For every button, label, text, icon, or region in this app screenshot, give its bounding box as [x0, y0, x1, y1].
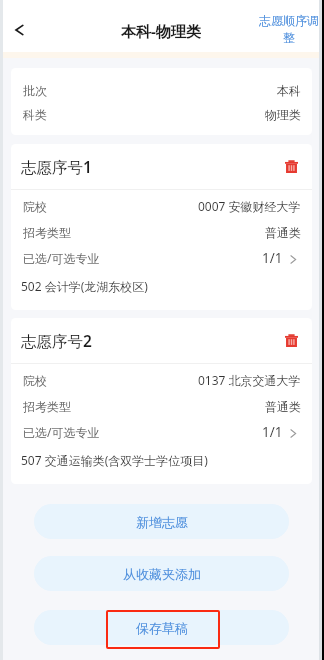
button[interactable]: 从收藏夹添加 — [34, 556, 289, 591]
staticText: 院校 — [23, 373, 47, 388]
button[interactable]: 返回 — [4, 15, 34, 45]
staticText: 志愿序号2 — [21, 330, 92, 351]
staticText: 502 会计学(龙湖东校区) — [21, 278, 148, 294]
staticText: 已选/可选专业 — [23, 424, 100, 440]
button[interactable]: 已选/可选专业 — [11, 246, 312, 270]
staticText: 从收藏夹添加 — [123, 566, 201, 582]
staticText: 507 交通运输类(含双学士学位项目) — [21, 452, 208, 468]
button[interactable]: 删除 — [279, 329, 303, 352]
button[interactable]: 保存草稿 — [34, 610, 289, 645]
staticText: 保存草稿 — [136, 620, 188, 636]
staticText: 批次 — [23, 83, 47, 98]
button[interactable]: 已选/可选专业 — [11, 420, 312, 444]
button[interactable]: 删除 — [279, 155, 303, 178]
staticText: 普通类 — [265, 399, 301, 414]
staticText: 院校 — [23, 199, 47, 214]
staticText: 志愿序号1 — [21, 156, 92, 177]
staticText: 普通类 — [265, 225, 301, 240]
staticText: 志愿顺序调整 — [256, 13, 322, 45]
staticText: 已选/可选专业 — [23, 250, 100, 266]
staticText: 科类 — [23, 107, 47, 122]
button[interactable]: 新增志愿 — [34, 504, 289, 539]
staticText: 招考类型 — [23, 225, 71, 240]
staticText: 1/1 — [262, 249, 283, 267]
staticText: 本科-物理类 — [121, 21, 201, 41]
button[interactable]: 志愿顺序调整 — [256, 13, 322, 45]
staticText: 0137 北京交通大学 — [198, 372, 301, 388]
staticText: 0007 安徽财经大学 — [198, 198, 301, 214]
staticText: 新增志愿 — [136, 514, 188, 530]
staticText: 本科 — [277, 83, 301, 98]
staticText: 1/1 — [262, 423, 283, 441]
staticText: 物理类 — [265, 107, 301, 122]
staticText: 招考类型 — [23, 399, 71, 414]
